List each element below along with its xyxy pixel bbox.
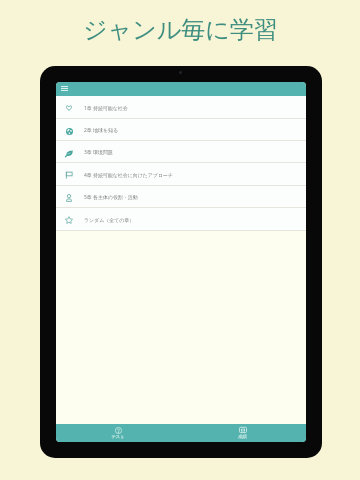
button[interactable]: 2章 地球を知る <box>56 119 306 141</box>
button[interactable]: 4章 持続可能な社会に向けたアプローチ <box>56 163 306 186</box>
staticText: 5章 各主体の役割・活動 <box>84 194 138 201</box>
button[interactable]: Results <box>181 424 306 438</box>
staticText: 1章 持続可能な社会 <box>84 105 128 112</box>
staticText: ジャンル毎に学習 <box>83 15 278 45</box>
staticText: 3章 環境問題 <box>84 149 113 156</box>
button[interactable]: 3章 環境問題 <box>56 141 306 163</box>
button[interactable]: 1章 持続可能な社会 <box>56 96 306 119</box>
button[interactable]: Menu <box>58 82 70 94</box>
button[interactable]: 5章 各主体の役割・活動 <box>56 186 306 208</box>
staticText: 4章 持続可能な社会に向けたアプローチ <box>84 172 173 179</box>
button[interactable]: Test <box>56 424 181 438</box>
button[interactable]: ランダム（全ての章） <box>56 208 306 231</box>
staticText: 成績 <box>238 434 247 439</box>
staticText: テスト <box>111 434 125 439</box>
staticText: 2章 地球を知る <box>84 127 118 134</box>
staticText: ランダム（全ての章） <box>84 217 135 223</box>
